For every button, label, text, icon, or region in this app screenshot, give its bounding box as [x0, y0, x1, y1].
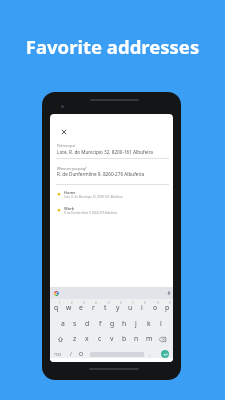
staticText: / [70, 351, 72, 357]
button[interactable]: z [69, 332, 81, 345]
button[interactable]: f [94, 317, 106, 330]
button[interactable]: i [136, 301, 148, 314]
staticText: Lote, R. do Municipio 32, 8200-161 Albuf… [64, 195, 123, 199]
button[interactable]: n [130, 332, 142, 345]
staticText: g [110, 319, 115, 328]
button[interactable]: Home [50, 188, 173, 203]
button[interactable]: h [118, 317, 130, 330]
staticText: Work [64, 206, 75, 211]
button[interactable]: w [63, 301, 75, 314]
staticText: p [165, 303, 170, 312]
staticText: Pick me up at [57, 144, 76, 148]
staticText: 1 [59, 301, 61, 305]
staticText: 9 [157, 301, 159, 305]
button[interactable]: v [106, 332, 118, 345]
staticText: j [135, 319, 137, 328]
button[interactable]: Backspace [156, 333, 168, 345]
button[interactable]: s [69, 317, 81, 330]
staticText: e [79, 303, 83, 312]
staticText: i [141, 303, 143, 312]
button[interactable]: Close [57, 125, 71, 139]
button[interactable]: u [124, 301, 136, 314]
staticText: u [128, 303, 133, 312]
button[interactable]: Emoji [77, 350, 85, 358]
button[interactable]: Enter [161, 350, 169, 358]
staticText: m [146, 334, 153, 343]
staticText: Lote, R. do Municipio 32, 8200-161 Albuf… [57, 149, 153, 155]
button[interactable]: c [94, 332, 106, 345]
button[interactable]: d [81, 317, 93, 330]
button[interactable]: r [87, 301, 99, 314]
staticText: R. de Dunfermline 9, 8260-276 Albufeira [57, 171, 145, 177]
button[interactable]: Shift [54, 333, 66, 345]
button[interactable]: e [75, 301, 87, 314]
button[interactable]: Voice input [166, 290, 172, 296]
staticText: 8 [144, 301, 146, 305]
button[interactable]: m [143, 332, 155, 345]
button[interactable]: y [112, 301, 124, 314]
button[interactable]: g [106, 317, 118, 330]
staticText: r [92, 303, 95, 312]
staticText: ?123 [54, 352, 62, 356]
staticText: 0 [169, 301, 171, 305]
staticText: n [134, 334, 139, 343]
staticText: k [147, 319, 151, 328]
staticText: y [116, 303, 120, 312]
staticText: v [110, 334, 114, 343]
button[interactable]: j [130, 317, 142, 330]
staticText: 6 [120, 301, 122, 305]
button[interactable]: b [118, 332, 130, 345]
staticText: x [85, 334, 89, 343]
staticText: Home [64, 190, 76, 195]
staticText: a [61, 319, 65, 328]
staticText: R. de Dunfermline 9, 8260-276 Albufeira [64, 211, 118, 215]
staticText: c [98, 334, 102, 343]
staticText: 5 [108, 301, 110, 305]
button[interactable]: Work [50, 204, 173, 219]
staticText: t [104, 303, 107, 312]
button[interactable]: x [81, 332, 93, 345]
staticText: o [153, 303, 158, 312]
staticText: Where are you going? [57, 167, 87, 171]
staticText: d [85, 319, 90, 328]
staticText: q [54, 303, 59, 312]
staticText: b [122, 334, 127, 343]
staticText: f [99, 319, 102, 328]
staticText: 7 [132, 301, 134, 305]
button[interactable]: t [99, 301, 111, 314]
button[interactable]: q [50, 301, 62, 314]
button[interactable]: l [155, 317, 167, 330]
button[interactable]: a [57, 317, 69, 330]
staticText: l [160, 319, 162, 328]
button[interactable]: p [161, 301, 173, 314]
staticText: Favorite addresses [0, 34, 225, 59]
staticText: 3 [83, 301, 85, 305]
button[interactable]: o [149, 301, 161, 314]
staticText: 2 [71, 301, 73, 305]
staticText: s [73, 319, 77, 328]
staticText: . [149, 351, 151, 357]
staticText: 4 [95, 301, 97, 305]
button[interactable]: k [143, 317, 155, 330]
staticText: h [122, 319, 127, 328]
staticText: w [66, 303, 72, 312]
staticText: z [73, 334, 77, 343]
